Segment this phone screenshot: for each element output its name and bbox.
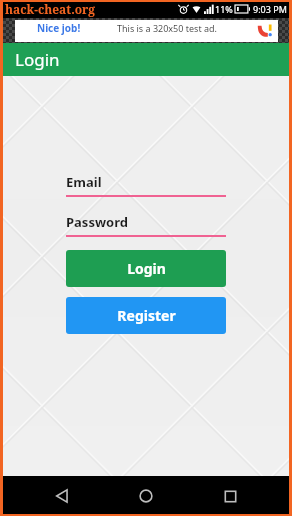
staticText: hack-cheat.org — [5, 1, 96, 17]
staticText: 9:03 PM — [253, 3, 287, 15]
staticText: Email — [66, 173, 102, 191]
button[interactable]: Email — [66, 173, 226, 197]
button[interactable]: Login — [66, 250, 226, 287]
button[interactable]: Back — [40, 476, 84, 516]
staticText: Nice job! — [37, 21, 81, 35]
button[interactable]: Register — [66, 297, 226, 334]
button[interactable]: Recent apps — [208, 476, 252, 516]
staticText: Login — [127, 259, 166, 278]
staticText: Login — [15, 48, 60, 71]
button[interactable]: Advertisement — [0, 18, 292, 43]
button[interactable]: Home — [124, 476, 168, 516]
staticText: Register — [117, 306, 176, 325]
staticText: This is a 320x50 test ad. — [117, 22, 217, 34]
staticText: Password — [66, 213, 128, 231]
staticText: 11% — [215, 3, 233, 15]
button[interactable]: Password — [66, 213, 226, 237]
